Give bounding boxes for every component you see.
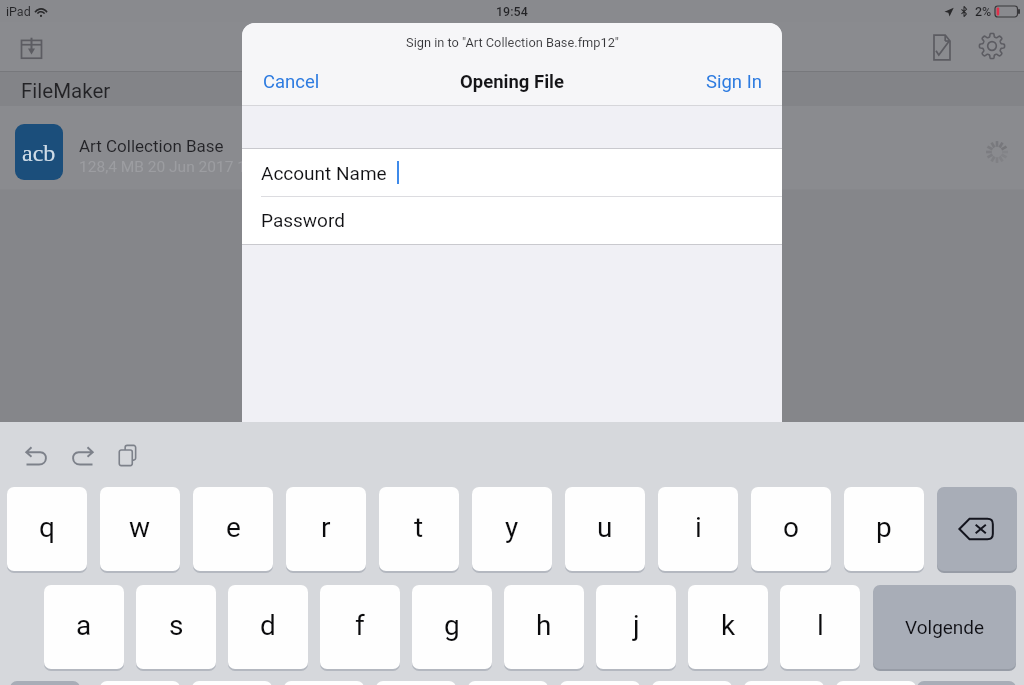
staticText: i bbox=[695, 511, 702, 544]
button[interactable]: l bbox=[780, 585, 860, 669]
button[interactable]: f bbox=[320, 585, 400, 669]
staticText: y bbox=[505, 511, 519, 544]
button[interactable]: e bbox=[193, 487, 273, 571]
button[interactable] bbox=[652, 681, 732, 685]
staticText: Opening File bbox=[460, 71, 564, 93]
button[interactable]: Volgende bbox=[873, 585, 1016, 669]
staticText: e bbox=[226, 511, 241, 544]
staticText: Account Name bbox=[261, 162, 387, 184]
button[interactable]: j bbox=[596, 585, 676, 669]
staticText: l bbox=[817, 609, 824, 642]
button[interactable]: h bbox=[504, 585, 584, 669]
staticText: Sign in to "Art Collection Base.fmp12" bbox=[406, 35, 619, 50]
staticText: q bbox=[39, 511, 55, 544]
staticText: Password bbox=[261, 209, 345, 231]
button[interactable]: Password bbox=[242, 196, 782, 244]
button[interactable]: Undo bbox=[17, 436, 55, 474]
staticText: p bbox=[876, 511, 892, 544]
button[interactable] bbox=[100, 681, 180, 685]
button[interactable]: w bbox=[100, 487, 180, 571]
button[interactable]: Account Name bbox=[242, 149, 782, 196]
staticText: 2% bbox=[975, 4, 992, 19]
button[interactable]: Shift bbox=[10, 681, 80, 685]
button[interactable]: p bbox=[844, 487, 924, 571]
staticText: w bbox=[129, 511, 151, 544]
button[interactable]: Import file bbox=[12, 29, 50, 67]
staticText: Art Collection Base bbox=[79, 136, 224, 156]
staticText: FileMaker bbox=[21, 79, 111, 103]
button[interactable] bbox=[744, 681, 824, 685]
button[interactable] bbox=[468, 681, 548, 685]
button[interactable]: k bbox=[688, 585, 768, 669]
staticText: 128,4 MB 20 Jun 2017 17: bbox=[79, 158, 259, 176]
button[interactable] bbox=[376, 681, 456, 685]
staticText: Cancel bbox=[263, 71, 320, 93]
button[interactable] bbox=[836, 681, 916, 685]
staticText: h bbox=[536, 609, 552, 642]
button[interactable]: Document bbox=[925, 28, 958, 66]
button[interactable]: i bbox=[658, 487, 738, 571]
button[interactable]: Redo bbox=[63, 436, 101, 474]
button[interactable]: Settings bbox=[975, 27, 1009, 65]
button[interactable]: Shift right bbox=[917, 681, 1016, 685]
staticText: Sign In bbox=[706, 71, 762, 93]
button[interactable] bbox=[284, 681, 364, 685]
button[interactable]: g bbox=[412, 585, 492, 669]
button[interactable] bbox=[192, 681, 272, 685]
button[interactable]: Backspace bbox=[937, 487, 1017, 571]
button[interactable]: q bbox=[7, 487, 87, 571]
staticText: s bbox=[169, 609, 184, 642]
staticText: Volgende bbox=[905, 616, 985, 638]
button[interactable]: Paste bbox=[109, 436, 147, 474]
staticText: f bbox=[355, 609, 365, 642]
staticText: a bbox=[76, 609, 92, 642]
staticText: acb bbox=[22, 140, 56, 167]
button[interactable]: y bbox=[472, 487, 552, 571]
staticText: o bbox=[783, 511, 799, 544]
button[interactable]: Sign In bbox=[693, 63, 775, 101]
button[interactable]: t bbox=[379, 487, 459, 571]
staticText: r bbox=[321, 511, 331, 544]
button[interactable]: a bbox=[44, 585, 124, 669]
staticText: d bbox=[260, 609, 276, 642]
staticText: t bbox=[414, 511, 424, 544]
button[interactable]: o bbox=[751, 487, 831, 571]
staticText: u bbox=[597, 511, 613, 544]
button[interactable] bbox=[560, 681, 640, 685]
button[interactable]: u bbox=[565, 487, 645, 571]
button[interactable]: s bbox=[136, 585, 216, 669]
staticText: g bbox=[444, 609, 460, 642]
button[interactable]: r bbox=[286, 487, 366, 571]
button[interactable]: Cancel bbox=[250, 63, 333, 101]
staticText: j bbox=[633, 609, 640, 642]
staticText: iPad bbox=[6, 4, 31, 19]
button[interactable]: d bbox=[228, 585, 308, 669]
staticText: k bbox=[721, 609, 736, 642]
button[interactable]: acb bbox=[0, 106, 1024, 189]
staticText: 19:54 bbox=[496, 4, 528, 19]
